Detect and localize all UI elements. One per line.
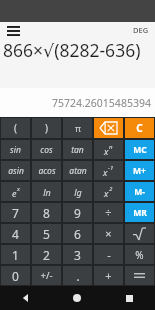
button[interactable]: e [1, 182, 30, 201]
button[interactable]: acos [32, 161, 61, 180]
staticText: 8 [43, 205, 50, 221]
button[interactable]: DEG [131, 25, 151, 35]
button[interactable]: asin [1, 161, 30, 180]
button[interactable]: ln [32, 182, 61, 201]
staticText: M- [134, 186, 145, 198]
staticText: 2 [43, 247, 50, 263]
button[interactable]: M- [125, 182, 154, 201]
staticText: acos [38, 165, 56, 177]
button[interactable]: Home [51, 286, 103, 310]
button[interactable]: sin [1, 140, 30, 159]
button[interactable]: x [94, 182, 123, 201]
button[interactable]: 7 [1, 203, 30, 222]
button[interactable]: 1 [1, 245, 30, 264]
button[interactable]: x [94, 140, 123, 159]
staticText: 2 [109, 184, 113, 192]
staticText: e [12, 187, 17, 199]
staticText: C [136, 121, 143, 135]
staticText: 866×√(8282-636) [3, 38, 141, 62]
staticText: lg [74, 186, 82, 198]
staticText: π [75, 122, 81, 134]
staticText: MC [133, 144, 147, 156]
staticText: M+ [133, 165, 146, 177]
staticText: 0 [12, 268, 19, 284]
button[interactable]: ÷ [94, 203, 123, 222]
staticText: . [76, 268, 80, 284]
button[interactable]: Square root [125, 224, 154, 243]
staticText: 5 [43, 226, 50, 242]
staticText: atan [69, 165, 87, 177]
staticText: MR [133, 207, 147, 219]
staticText: sin [10, 144, 21, 156]
staticText: ln [43, 186, 51, 198]
button[interactable]: MC [125, 140, 154, 159]
staticText: ( [14, 121, 17, 135]
button[interactable]: +/- [32, 266, 61, 285]
button[interactable]: 2 [32, 245, 61, 264]
staticText: + [105, 268, 112, 283]
button[interactable]: 3 [63, 245, 92, 264]
button[interactable]: cos [32, 140, 61, 159]
button[interactable]: atan [63, 161, 92, 180]
button[interactable]: 5 [32, 224, 61, 243]
staticText: - [107, 247, 111, 262]
staticText: 1 [12, 247, 19, 263]
staticText: × [105, 226, 112, 241]
button[interactable]: ( [1, 118, 30, 138]
button[interactable]: lg [63, 182, 92, 201]
button[interactable]: x [94, 161, 123, 180]
button[interactable]: C [125, 118, 154, 138]
staticText: 7 [12, 205, 19, 221]
button[interactable]: tan [63, 140, 92, 159]
button[interactable]: Equals [125, 266, 154, 285]
staticText: x [17, 184, 20, 192]
button[interactable]: ) [32, 118, 61, 138]
staticText: 4 [12, 226, 19, 242]
staticText: n [109, 142, 113, 150]
staticText: % [135, 248, 144, 262]
staticText: -1 [108, 163, 114, 171]
staticText: DEG [133, 25, 149, 35]
staticText: x [104, 145, 109, 157]
staticText: 3 [74, 247, 81, 263]
staticText: +/- [40, 269, 53, 282]
staticText: x [103, 166, 108, 178]
staticText: 9 [74, 205, 81, 221]
button[interactable]: Backspace [94, 118, 123, 138]
button[interactable]: Recent apps [103, 286, 155, 310]
button[interactable]: - [94, 245, 123, 264]
staticText: tan [71, 144, 84, 156]
button[interactable]: 9 [63, 203, 92, 222]
staticText: 6 [74, 226, 81, 242]
button[interactable]: MR [125, 203, 154, 222]
staticText: cos [40, 144, 53, 156]
staticText: ÷ [105, 205, 112, 220]
button[interactable]: % [125, 245, 154, 264]
button[interactable]: 8 [32, 203, 61, 222]
staticText: ) [45, 121, 48, 135]
button[interactable]: π [63, 118, 92, 138]
button[interactable]: . [63, 266, 92, 285]
staticText: x [104, 187, 109, 199]
staticText: asin [8, 165, 24, 177]
button[interactable]: 6 [63, 224, 92, 243]
button[interactable]: M+ [125, 161, 154, 180]
button[interactable]: 0 [1, 266, 30, 285]
button[interactable]: Menu [4, 23, 22, 38]
button[interactable]: Back [0, 286, 51, 310]
button[interactable]: × [94, 224, 123, 243]
button[interactable]: + [94, 266, 123, 285]
staticText: 75724.26015485394 [52, 96, 151, 110]
button[interactable]: 4 [1, 224, 30, 243]
